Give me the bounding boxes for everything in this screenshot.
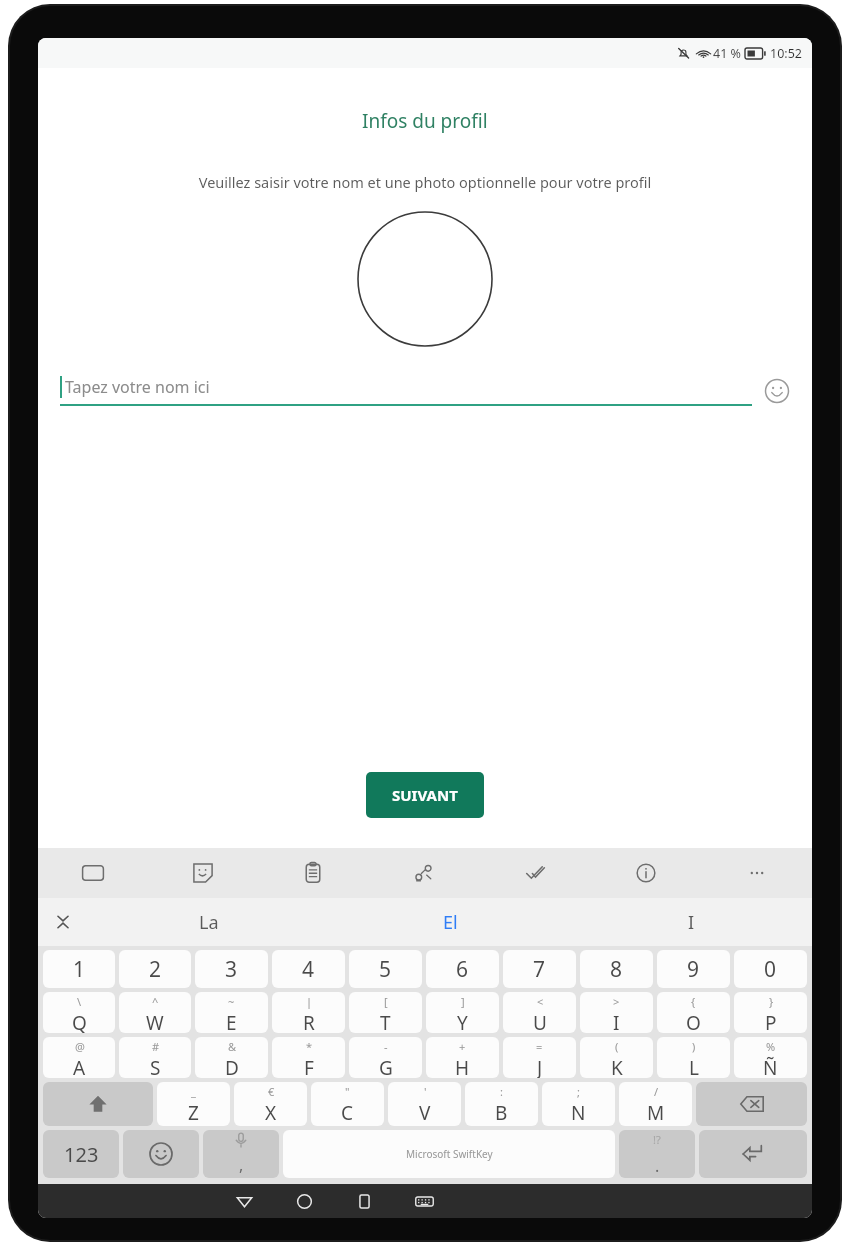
button[interactable]: La [88, 898, 330, 946]
staticText: * [306, 1039, 313, 1054]
button[interactable]: 123 [43, 1130, 119, 1178]
button[interactable]: SUIVANT [366, 772, 484, 818]
button[interactable]: = [503, 1037, 576, 1078]
staticText: ^ [152, 994, 159, 1009]
staticText: W [146, 1010, 164, 1033]
staticText: @ [75, 1039, 85, 1054]
button[interactable]: Presse-papiers [258, 848, 368, 898]
staticText: + [459, 1039, 466, 1054]
staticText: U [533, 1010, 547, 1033]
button[interactable]: Majuscule [43, 1082, 153, 1126]
staticText: " [345, 1084, 350, 1099]
button[interactable]: 1 [43, 950, 115, 988]
button[interactable]: ; [542, 1082, 615, 1126]
staticText: - [384, 1039, 388, 1054]
button[interactable]: _ [157, 1082, 230, 1126]
staticText: 1 [73, 955, 86, 984]
staticText: L [689, 1055, 699, 1078]
staticText: 3 [225, 955, 238, 984]
button[interactable]: Traduction [368, 848, 479, 898]
button[interactable]: I [571, 898, 812, 946]
button[interactable]: % [734, 1037, 807, 1078]
staticText: _ [191, 1084, 196, 1099]
button[interactable]: GIF [38, 848, 148, 898]
button[interactable]: ^ [119, 992, 191, 1033]
button[interactable]: 6 [426, 950, 499, 988]
staticText: , [239, 1154, 244, 1176]
button[interactable]: 5 [349, 950, 422, 988]
staticText: ; [577, 1084, 580, 1099]
button[interactable]: [ [349, 992, 422, 1033]
button[interactable]: / [619, 1082, 692, 1126]
button[interactable]: ] [426, 992, 499, 1033]
button[interactable]: Plus [701, 848, 812, 898]
staticText: E [226, 1010, 237, 1033]
staticText: ] [461, 994, 465, 1009]
button[interactable]: 8 [580, 950, 653, 988]
button[interactable]: Ajouter une photo de profil [356, 210, 494, 348]
button[interactable]: Stickers [148, 848, 258, 898]
button[interactable]: | [272, 992, 345, 1033]
staticText: Ñ [763, 1055, 778, 1078]
button[interactable]: Entrée [699, 1130, 807, 1178]
button[interactable]: Retour arrière [696, 1082, 807, 1126]
button[interactable]: Espace [283, 1130, 615, 1178]
button[interactable]: Emoji [764, 378, 790, 404]
staticText: I [613, 1010, 620, 1033]
staticText: \ [77, 994, 82, 1009]
button[interactable]: + [426, 1037, 499, 1078]
staticText: S [150, 1055, 161, 1078]
button[interactable]: @ [43, 1037, 115, 1078]
staticText: SUIVANT [392, 785, 458, 805]
staticText: Q [72, 1010, 87, 1033]
button[interactable]: El [330, 898, 571, 946]
staticText: Z [188, 1100, 199, 1126]
button[interactable]: < [503, 992, 576, 1033]
button[interactable]: & [195, 1037, 268, 1078]
button[interactable]: Accueil [281, 1184, 327, 1218]
staticText: G [379, 1055, 393, 1078]
button[interactable]: Correction [479, 848, 590, 898]
staticText: Y [457, 1010, 468, 1033]
staticText: : [500, 1084, 503, 1099]
button[interactable]: € [234, 1082, 307, 1126]
staticText: H [455, 1055, 470, 1078]
button[interactable]: ) [657, 1037, 730, 1078]
staticText: ( [615, 1039, 619, 1054]
button[interactable]: { [657, 992, 730, 1033]
button[interactable]: ' [388, 1082, 461, 1126]
button[interactable]: 4 [272, 950, 345, 988]
button[interactable]: Retour [221, 1184, 267, 1218]
button[interactable]: Emoji [123, 1130, 199, 1178]
button[interactable]: 2 [119, 950, 191, 988]
button[interactable]: ( [580, 1037, 653, 1078]
staticText: # [152, 1039, 160, 1054]
button[interactable]: 7 [503, 950, 576, 988]
button[interactable]: Infos [590, 848, 701, 898]
button[interactable]: Micro [203, 1130, 279, 1178]
button[interactable]: Clavier [401, 1184, 447, 1218]
button[interactable]: Applications récentes [341, 1184, 387, 1218]
button[interactable]: ~ [195, 992, 268, 1033]
button[interactable]: \ [43, 992, 115, 1033]
button[interactable]: 9 [657, 950, 730, 988]
button[interactable]: Réduire [38, 898, 88, 946]
button[interactable]: > [580, 992, 653, 1033]
button[interactable]: " [311, 1082, 384, 1126]
staticText: A [73, 1055, 86, 1078]
button[interactable]: # [119, 1037, 191, 1078]
staticText: 9 [687, 955, 700, 984]
staticText: La [199, 910, 219, 935]
button[interactable]: - [349, 1037, 422, 1078]
button[interactable]: : [465, 1082, 538, 1126]
button[interactable]: } [734, 992, 807, 1033]
button[interactable]: 0 [734, 950, 807, 988]
staticText: % [766, 1039, 776, 1054]
staticText: O [686, 1010, 701, 1033]
button[interactable]: Point [619, 1130, 695, 1178]
staticText: X [265, 1100, 277, 1126]
staticText: & [228, 1039, 237, 1054]
button[interactable]: 3 [195, 950, 268, 988]
button[interactable]: Tapez votre nom ici [60, 376, 790, 406]
button[interactable]: * [272, 1037, 345, 1078]
